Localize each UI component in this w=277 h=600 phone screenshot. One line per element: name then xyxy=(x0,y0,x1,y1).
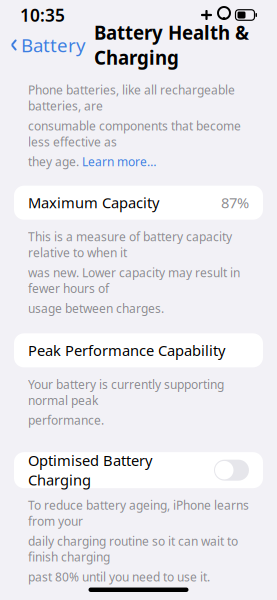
staticText: Phone batteries, like all rechargeable b… xyxy=(28,82,235,114)
staticText: consumable components that become less e… xyxy=(28,118,241,150)
button[interactable]: Peak Performance Capability xyxy=(14,333,263,367)
staticText: Learn more… xyxy=(82,154,156,170)
staticText: Battery xyxy=(21,33,86,57)
staticText: they age. xyxy=(28,154,82,170)
staticText: usage between charges. xyxy=(28,300,164,316)
staticText: 87% xyxy=(221,193,249,212)
staticText: was new. Lower capacity may result in fe… xyxy=(28,264,240,296)
staticText: Optimised Battery Charging xyxy=(28,451,152,490)
button[interactable]: Learn more… xyxy=(82,154,156,170)
button[interactable]: Maximum Capacity xyxy=(14,186,263,220)
staticText: Peak Performance Capability xyxy=(28,341,225,360)
staticText: This is a measure of battery capacity re… xyxy=(28,229,232,261)
staticText: Battery Health & Charging xyxy=(94,20,249,70)
staticText: Your battery is currently supporting nor… xyxy=(28,376,224,408)
button[interactable]: Battery xyxy=(0,27,86,63)
staticText: Maximum Capacity xyxy=(28,193,159,212)
staticText: performance. xyxy=(28,412,104,428)
staticText: daily charging routine so it can wait to… xyxy=(28,533,238,565)
button[interactable]: Optimised Battery Charging xyxy=(14,452,263,488)
staticText: past 80% until you need to use it. xyxy=(28,569,210,585)
staticText: To reduce battery ageing, iPhone learns … xyxy=(28,497,249,529)
staticText: 10:35 xyxy=(20,3,65,26)
